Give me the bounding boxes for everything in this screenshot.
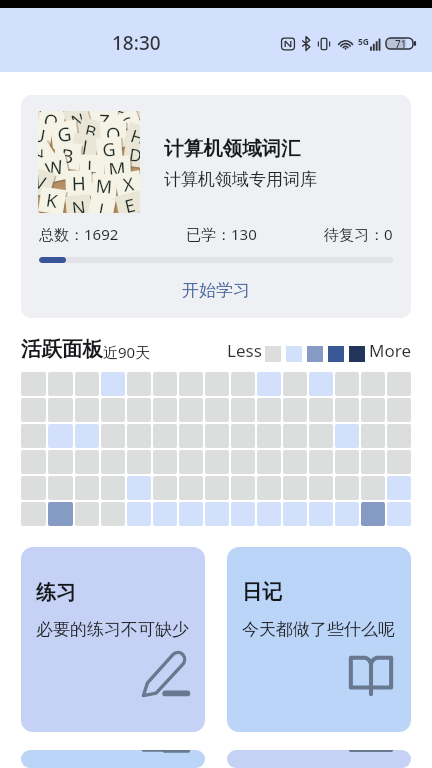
staticText: More (369, 339, 411, 362)
button[interactable]: 计算机领域词汇 (21, 95, 411, 318)
staticText: 18:30 (112, 30, 161, 56)
staticText: 近90天 (103, 342, 151, 362)
staticText: 开始学习 (182, 280, 250, 301)
staticText: 活跃面板 (21, 336, 103, 362)
staticText: 待复习：0 (324, 224, 393, 244)
button[interactable]: 单词本 (21, 750, 205, 768)
button[interactable]: 开始学习 (21, 263, 411, 318)
staticText: 总数：1692 (39, 224, 119, 244)
button[interactable]: 设置 (227, 750, 411, 768)
button[interactable]: 练习 (21, 547, 205, 732)
staticText: 计算机领域专用词库 (164, 169, 317, 190)
staticText: 必要的练习不可缺少 (36, 619, 189, 640)
staticText: 5G (358, 36, 370, 48)
staticText: 71 (395, 37, 407, 51)
staticText: Less (227, 339, 262, 362)
button[interactable]: 日记 (227, 547, 411, 732)
staticText: 计算机领域词汇 (164, 136, 301, 161)
staticText: 今天都做了些什么呢 (242, 619, 395, 640)
staticText: 练习 (36, 580, 76, 605)
staticText: 已学：130 (186, 224, 257, 244)
staticText: 日记 (242, 580, 282, 605)
